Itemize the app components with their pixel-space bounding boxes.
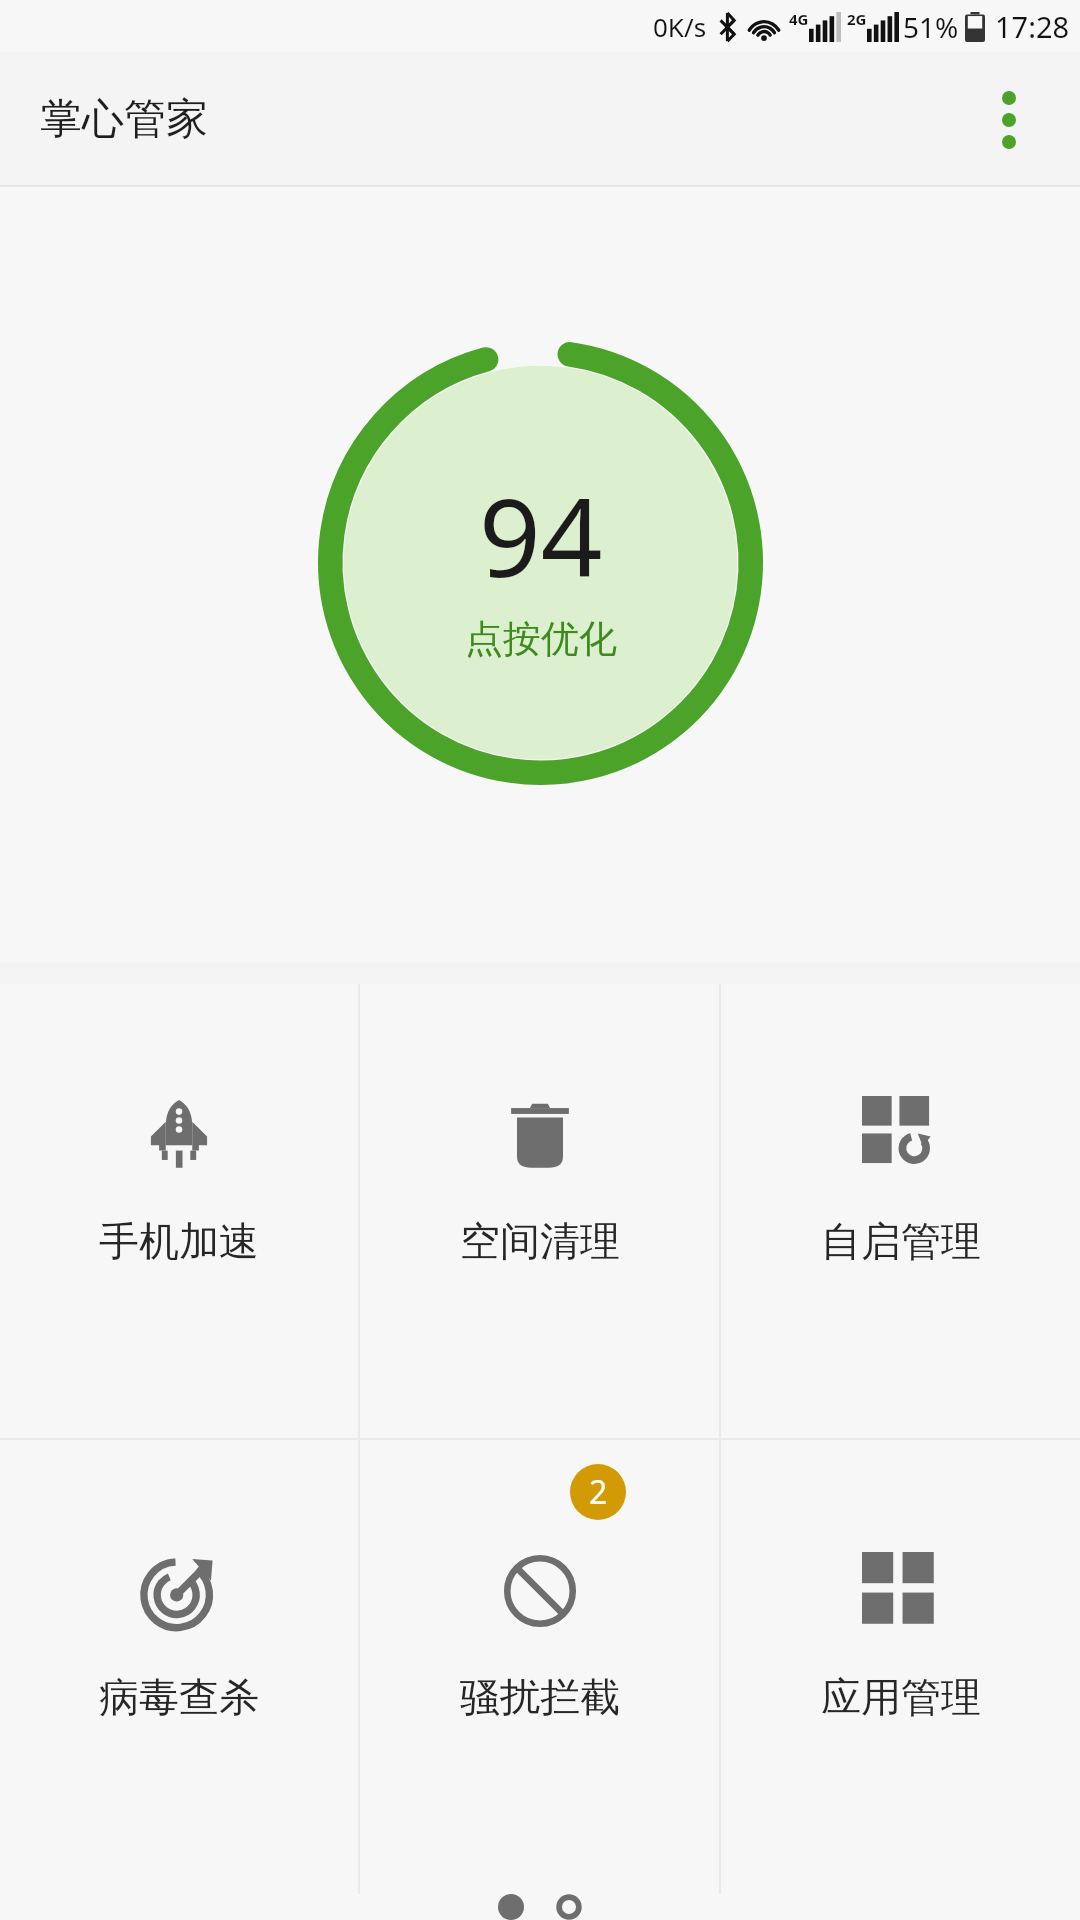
staticText: 自启管理: [821, 1216, 981, 1266]
button[interactable]: 骚扰拦截: [360, 1440, 719, 1894]
staticText: 0K/s: [653, 9, 707, 44]
staticText: 空间清理: [460, 1216, 620, 1266]
staticText: 2G: [847, 9, 867, 29]
button[interactable]: Optimize, score 94: [318, 340, 763, 785]
staticText: 掌心管家: [40, 93, 208, 146]
staticText: 17:28: [995, 7, 1070, 46]
staticText: 94: [479, 462, 603, 609]
button[interactable]: 应用管理: [721, 1440, 1080, 1894]
staticText: 51%: [903, 8, 959, 46]
staticText: 点按优化: [465, 615, 617, 663]
staticText: 病毒查杀: [99, 1672, 259, 1722]
button[interactable]: 自启管理: [721, 984, 1080, 1438]
staticText: 2: [589, 1470, 608, 1514]
button[interactable]: 病毒查杀: [0, 1440, 358, 1894]
staticText: 手机加速: [99, 1216, 259, 1266]
staticText: 4G: [789, 9, 809, 29]
button[interactable]: 空间清理: [360, 984, 719, 1438]
staticText: 应用管理: [821, 1672, 981, 1722]
button[interactable]: More options: [964, 75, 1054, 165]
button[interactable]: 手机加速: [0, 984, 358, 1438]
staticText: 骚扰拦截: [460, 1672, 620, 1722]
